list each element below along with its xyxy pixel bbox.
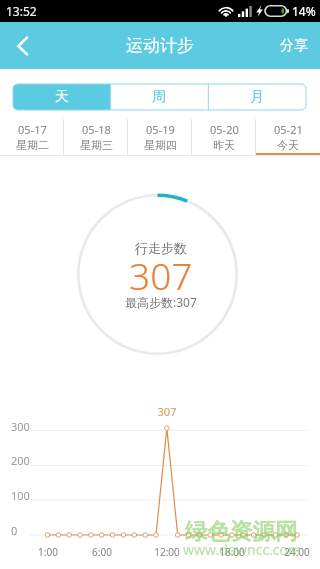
staticText: 05-20 (210, 122, 239, 137)
staticText: 307 (147, 404, 187, 419)
staticText: 05-19 (146, 122, 175, 137)
button[interactable]: 周 (110, 84, 208, 110)
staticText: 月 (250, 88, 264, 106)
staticText: 307 (129, 250, 193, 300)
button[interactable]: 天 (13, 84, 110, 110)
staticText: 昨天 (213, 138, 235, 152)
button[interactable]: 分享 (268, 22, 320, 69)
staticText: 200 (11, 453, 30, 468)
button[interactable]: 05-19 (128, 119, 192, 155)
staticText: 行走步数 (135, 240, 187, 256)
staticText: 最高步数:307 (125, 294, 197, 310)
staticText: 分享 (280, 37, 308, 55)
staticText: 13:52 (6, 3, 37, 19)
staticText: 05-17 (18, 122, 47, 137)
staticText: 18:00 (212, 545, 252, 559)
button[interactable]: 月 (208, 84, 306, 110)
staticText: 周 (152, 88, 166, 106)
staticText: 05-18 (82, 122, 111, 137)
staticText: 100 (11, 488, 30, 503)
staticText: 0 (11, 523, 18, 538)
staticText: 300 (11, 419, 30, 434)
button[interactable]: 05-21 (256, 119, 320, 155)
staticText: 6:00 (82, 545, 122, 559)
button[interactable]: 05-17 (0, 119, 64, 155)
button[interactable]: 05-18 (64, 119, 128, 155)
staticText: 05-21 (274, 122, 303, 137)
button[interactable]: Back (0, 24, 44, 68)
staticText: 星期二 (16, 138, 49, 152)
staticText: 星期四 (144, 138, 177, 152)
staticText: 24:00 (277, 545, 317, 559)
button[interactable]: 05-20 (192, 119, 256, 155)
staticText: 14% (292, 3, 316, 19)
staticText: 绿色资源网 (185, 517, 298, 545)
staticText: 1:00 (28, 545, 68, 559)
staticText: 12:00 (147, 545, 187, 559)
staticText: 今天 (277, 138, 299, 152)
staticText: 星期三 (80, 138, 113, 152)
staticText: 运动计步 (126, 35, 194, 56)
staticText: 天 (55, 88, 69, 106)
staticText: www.downcc.com (183, 540, 302, 559)
